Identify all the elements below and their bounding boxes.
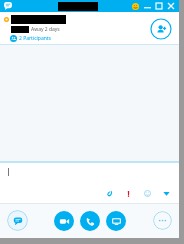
staticText: 2 Participants — [19, 35, 52, 42]
button[interactable]: Attach file — [103, 187, 115, 199]
button[interactable]: Important — [122, 187, 134, 199]
button[interactable]: Send — [160, 187, 172, 199]
button[interactable]: Chat — [7, 210, 28, 231]
button[interactable]: Add people — [150, 18, 172, 40]
button[interactable]: 2 Participants — [10, 35, 52, 42]
button[interactable]: Message input — [0, 163, 179, 185]
button[interactable]: Mood — [130, 1, 140, 11]
button[interactable]: Emoticons — [141, 187, 153, 199]
button[interactable]: Audio call — [80, 211, 100, 231]
button[interactable]: Maximize — [154, 1, 164, 11]
staticText: ! — [127, 187, 130, 199]
button[interactable]: Close — [166, 1, 176, 11]
button[interactable]: Share screen — [106, 211, 126, 231]
button[interactable]: Video call — [54, 211, 74, 231]
button[interactable]: More options — [153, 211, 172, 230]
button[interactable]: Minimize — [142, 1, 152, 11]
staticText: Away 2 days — [31, 26, 60, 33]
button[interactable]: Skype — [3, 1, 13, 11]
